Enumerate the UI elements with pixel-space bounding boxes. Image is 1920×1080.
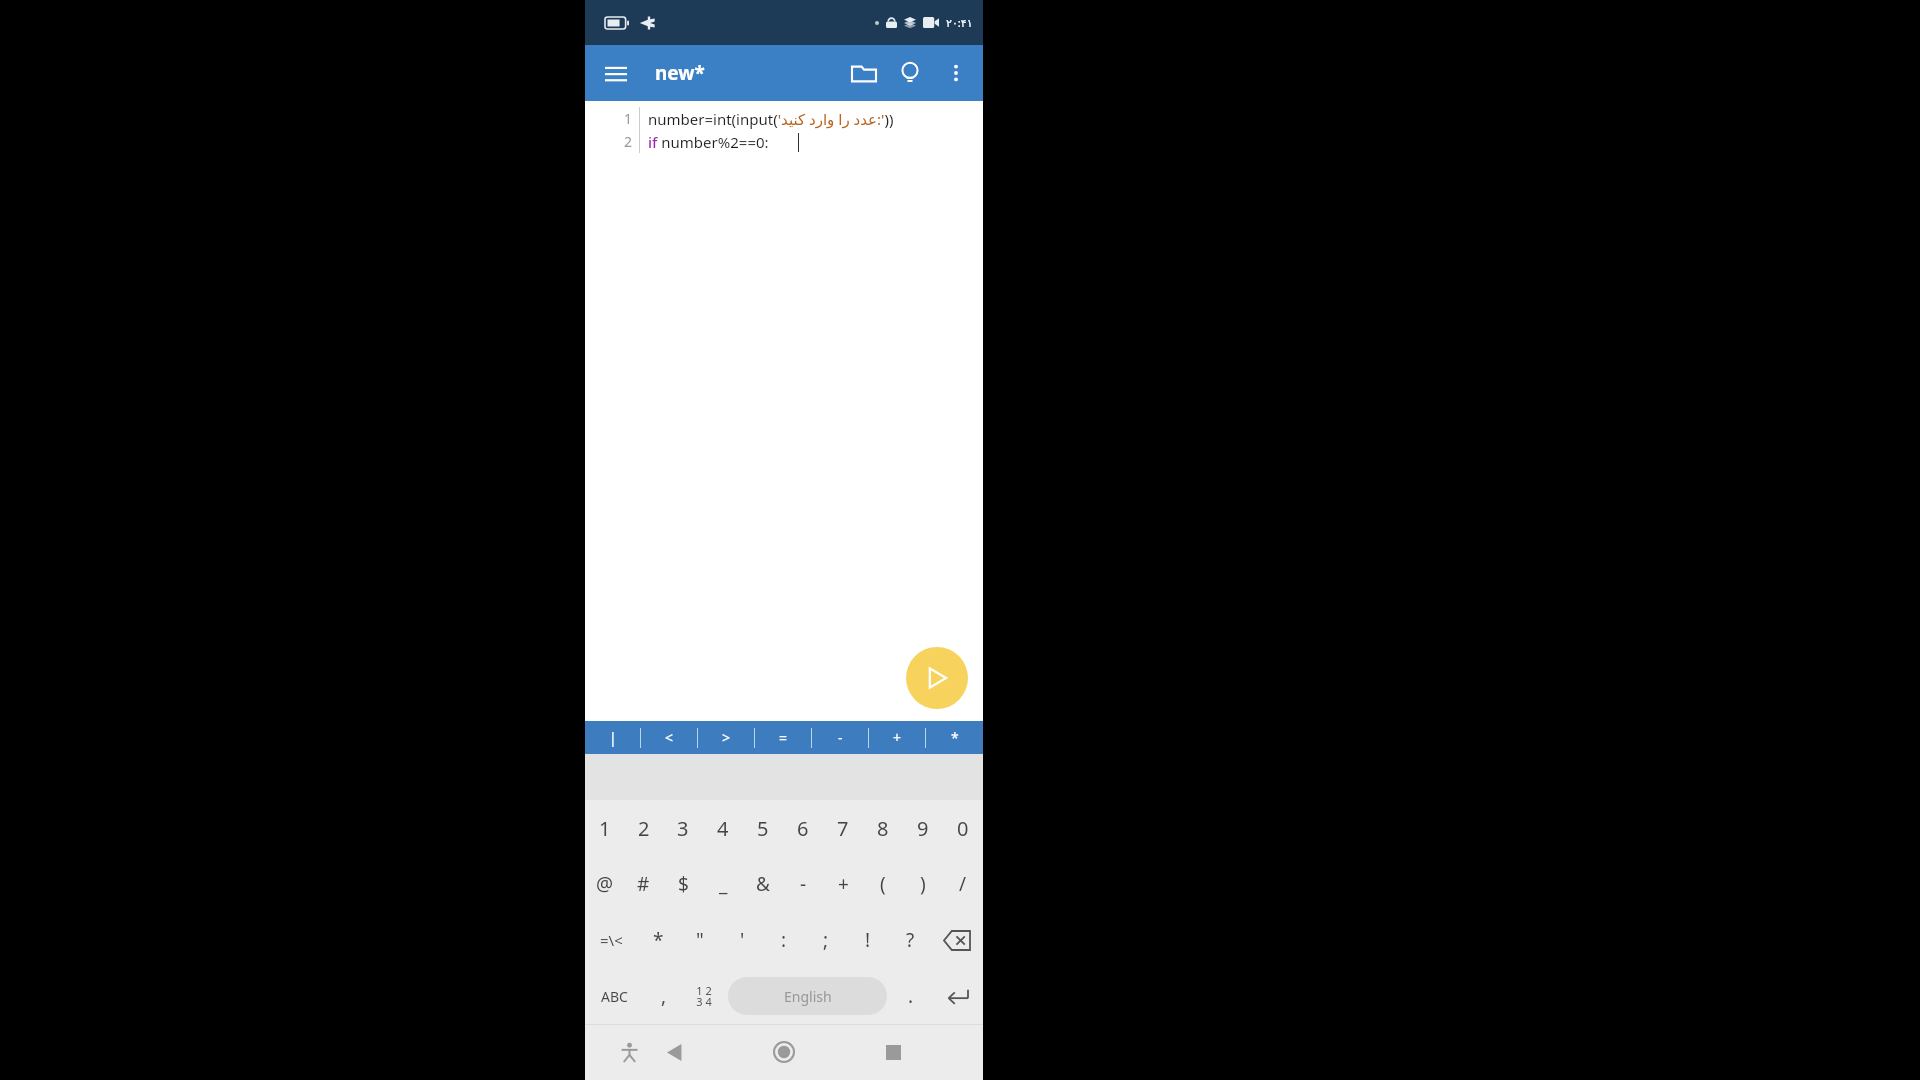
button[interactable]: |: [585, 721, 641, 754]
button[interactable]: ?: [889, 912, 931, 968]
button[interactable]: ": [679, 912, 721, 968]
button[interactable]: Recents: [873, 1032, 913, 1072]
staticText: #: [637, 871, 650, 897]
staticText: <: [665, 728, 674, 747]
button[interactable]: =: [755, 721, 812, 754]
button[interactable]: Back: [655, 1032, 695, 1072]
staticText: ۲۰:۴۱: [946, 15, 973, 30]
staticText: 0: [957, 815, 969, 842]
button[interactable]: +: [869, 721, 926, 754]
button[interactable]: ): [903, 856, 943, 912]
button[interactable]: Run: [906, 647, 968, 709]
staticText: ': [740, 927, 745, 953]
button[interactable]: @: [585, 856, 624, 912]
button[interactable]: -: [812, 721, 869, 754]
button[interactable]: Accessibility: [611, 1034, 647, 1070]
staticText: >: [722, 728, 731, 747]
staticText: 1: [624, 109, 633, 128]
staticText: 8: [877, 815, 889, 842]
button[interactable]: Hints: [887, 50, 933, 96]
staticText: ABC: [601, 987, 628, 1006]
button[interactable]: 1 2 3 4: [684, 968, 724, 1024]
button[interactable]: 0: [943, 800, 983, 856]
button[interactable]: #: [624, 856, 663, 912]
staticText: @: [596, 871, 614, 897]
button[interactable]: More options: [933, 50, 979, 96]
button[interactable]: 7: [823, 800, 863, 856]
staticText: 9: [917, 815, 929, 842]
staticText: =: [779, 728, 788, 747]
button[interactable]: +: [823, 856, 863, 912]
button[interactable]: ;: [805, 912, 847, 968]
staticText: +: [893, 728, 902, 747]
staticText: ,: [661, 983, 667, 1009]
button[interactable]: >: [698, 721, 755, 754]
button[interactable]: Menu: [593, 50, 639, 96]
button[interactable]: :: [763, 912, 805, 968]
staticText: $: [678, 871, 689, 897]
staticText: ": [696, 927, 704, 953]
staticText: number=int(input('عدد را وارد کنید:')): [648, 109, 894, 129]
button[interactable]: .: [891, 968, 931, 1024]
staticText: *: [653, 927, 664, 953]
button[interactable]: 4: [703, 800, 743, 856]
button[interactable]: Backspace: [931, 912, 983, 968]
staticText: new*: [655, 60, 705, 86]
button[interactable]: (: [863, 856, 903, 912]
staticText: 5: [757, 815, 769, 842]
staticText: =\<: [600, 930, 623, 950]
staticText: *: [951, 728, 959, 747]
button[interactable]: English: [728, 977, 887, 1015]
button[interactable]: $: [663, 856, 703, 912]
button[interactable]: ,: [644, 968, 684, 1024]
button[interactable]: /: [943, 856, 983, 912]
staticText: 4: [717, 815, 729, 842]
button[interactable]: 3: [663, 800, 703, 856]
staticText: 2: [624, 132, 633, 151]
staticText: ;: [823, 927, 829, 953]
staticText: 3: [677, 815, 689, 842]
button[interactable]: Home: [764, 1032, 804, 1072]
staticText: 1: [599, 815, 611, 842]
button[interactable]: <: [641, 721, 698, 754]
staticText: &: [756, 871, 770, 897]
button[interactable]: 6: [783, 800, 823, 856]
staticText: ): [920, 871, 926, 897]
staticText: -: [838, 728, 843, 747]
staticText: /: [959, 871, 967, 897]
staticText: .: [908, 983, 914, 1009]
staticText: :: [781, 927, 787, 953]
button[interactable]: *: [637, 912, 679, 968]
staticText: 1 2 3 4: [696, 983, 712, 1010]
staticText: 2: [638, 815, 650, 842]
staticText: _: [719, 871, 728, 897]
button[interactable]: 8: [863, 800, 903, 856]
staticText: +: [838, 871, 849, 897]
staticText: !: [865, 927, 871, 953]
button[interactable]: -: [783, 856, 823, 912]
staticText: (: [880, 871, 886, 897]
button[interactable]: 9: [903, 800, 943, 856]
staticText: |: [609, 728, 617, 747]
button[interactable]: 2: [624, 800, 663, 856]
button[interactable]: =\<: [585, 912, 637, 968]
button[interactable]: _: [703, 856, 743, 912]
button[interactable]: 5: [743, 800, 783, 856]
staticText: 7: [837, 815, 849, 842]
button[interactable]: 1: [585, 800, 624, 856]
staticText: 6: [797, 815, 809, 842]
staticText: English: [784, 987, 832, 1006]
button[interactable]: ABC: [585, 968, 644, 1024]
staticText: -: [800, 871, 807, 897]
button[interactable]: !: [847, 912, 889, 968]
button[interactable]: Enter: [931, 968, 983, 1024]
button[interactable]: &: [743, 856, 783, 912]
button[interactable]: ': [721, 912, 763, 968]
staticText: ?: [906, 927, 915, 953]
button[interactable]: Open folder: [841, 50, 887, 96]
staticText: if number%2==0:: [648, 132, 769, 152]
button[interactable]: *: [926, 721, 983, 754]
